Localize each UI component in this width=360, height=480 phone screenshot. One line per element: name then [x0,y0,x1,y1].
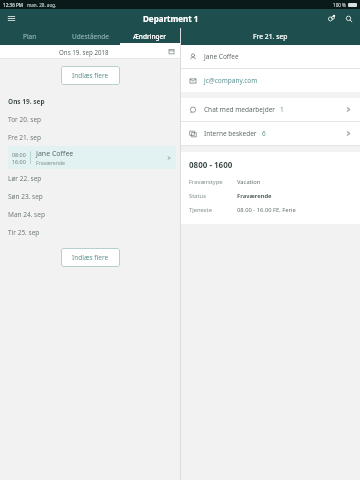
button[interactable]: Menu [5,12,18,25]
button[interactable]: 08:00 [8,146,176,169]
staticText: Department 1 [143,13,199,24]
staticText: Tir 25. sep [8,228,40,237]
button[interactable]: Ons 19. sep 2018 [0,45,180,58]
staticText: Fre 21. sep [8,133,41,142]
staticText: Interne beskeder [204,129,257,138]
button[interactable]: Interne beskeder [181,122,360,145]
staticText: Lør 22. sep [8,174,42,183]
button[interactable]: Ændringer [120,28,180,45]
staticText: 16:00 [12,158,26,165]
staticText: Søn 23. sep [8,192,43,201]
button[interactable]: Udestående [60,28,120,45]
button[interactable]: Notifications [325,12,338,25]
staticText: 12:36 PM [3,2,23,8]
staticText: Indlæs flere [72,253,109,262]
staticText: 100 % [333,2,346,8]
staticText: 6 [262,129,266,138]
staticText: jc@company.com [204,76,258,85]
button[interactable]: Plan [0,28,60,45]
staticText: 1 [280,105,284,114]
staticText: Chat med medarbejder [204,105,275,114]
staticText: Fraværstype [189,178,237,186]
staticText: Ons 19. sep 2018 [59,48,109,56]
staticText: 08.00 - 16.00 FE, Ferie [237,206,296,214]
staticText: Jane Coffee [36,149,74,159]
staticText: Tor 20. sep [8,115,42,124]
staticText: Indlæs flere [72,71,109,80]
button[interactable]: Indlæs flere [61,248,120,267]
staticText: Man 24. sep [8,210,45,219]
staticText: Tjeneste [189,206,237,214]
staticText: Fre 21. sep [253,32,288,41]
staticText: Ændringer [133,32,167,41]
staticText: Fraværende [36,159,66,166]
staticText: 08:00 [12,151,26,158]
button[interactable]: Jane Coffee [181,45,360,68]
staticText: Fraværende [237,192,272,200]
staticText: Jane Coffee [204,52,239,61]
button[interactable]: Chat med medarbejder [181,98,360,121]
staticText: Udestående [72,32,109,41]
staticText: 0800 - 1600 [189,159,233,170]
staticText: Status [189,192,237,200]
button[interactable]: jc@company.com [181,69,360,92]
button[interactable]: Indlæs flere [61,66,120,85]
button[interactable]: Search [342,12,355,25]
staticText: man. 28. aug. [27,2,57,8]
staticText: Vacation [237,178,261,186]
staticText: Ons 19. sep [8,97,45,106]
staticText: Plan [23,32,37,41]
